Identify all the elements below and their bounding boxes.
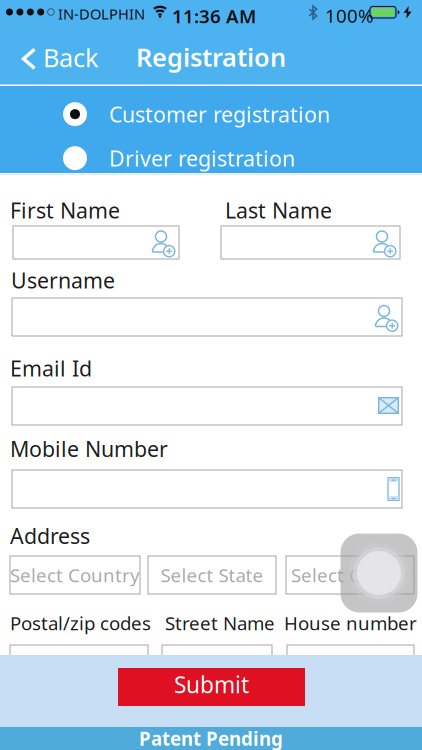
- staticText: Submit: [174, 669, 249, 699]
- button[interactable]: [12, 387, 402, 425]
- button[interactable]: [162, 645, 272, 683]
- staticText: Username: [11, 266, 115, 294]
- button[interactable]: Submit: [118, 668, 305, 706]
- button[interactable]: [10, 645, 148, 683]
- button[interactable]: [12, 298, 402, 336]
- button[interactable]: [12, 470, 402, 508]
- button[interactable]: Back: [21, 44, 99, 78]
- staticText: Customer registration: [109, 100, 330, 128]
- button[interactable]: Select Country: [10, 556, 140, 594]
- staticText: Postal/zip codes: [10, 610, 151, 635]
- staticText: IN-DOLPHIN: [58, 4, 145, 23]
- staticText: Back: [43, 40, 99, 74]
- staticText: House number: [284, 610, 417, 635]
- staticText: Registration: [136, 40, 286, 74]
- button[interactable]: [13, 226, 179, 259]
- staticText: Address: [10, 521, 90, 550]
- button[interactable]: [221, 226, 400, 259]
- button[interactable]: Customer registration: [63, 100, 330, 128]
- staticText: Street Name: [165, 610, 275, 635]
- button[interactable]: [287, 645, 414, 683]
- staticText: 11:36 AM: [172, 3, 256, 28]
- staticText: 100%: [325, 3, 374, 28]
- staticText: Last Name: [225, 196, 332, 224]
- staticText: Email Id: [10, 354, 92, 382]
- staticText: Driver registration: [109, 144, 295, 172]
- button[interactable]: Driver registration: [63, 144, 295, 172]
- button[interactable]: Select State: [148, 556, 276, 594]
- staticText: First Name: [10, 196, 120, 224]
- staticText: Mobile Number: [10, 434, 168, 463]
- button[interactable]: [340, 533, 417, 612]
- staticText: Select City: [291, 563, 383, 587]
- staticText: Select State: [160, 563, 263, 587]
- button[interactable]: Select City: [286, 556, 414, 594]
- staticText: Patent Pending: [139, 726, 283, 750]
- staticText: Select Country: [10, 563, 140, 587]
